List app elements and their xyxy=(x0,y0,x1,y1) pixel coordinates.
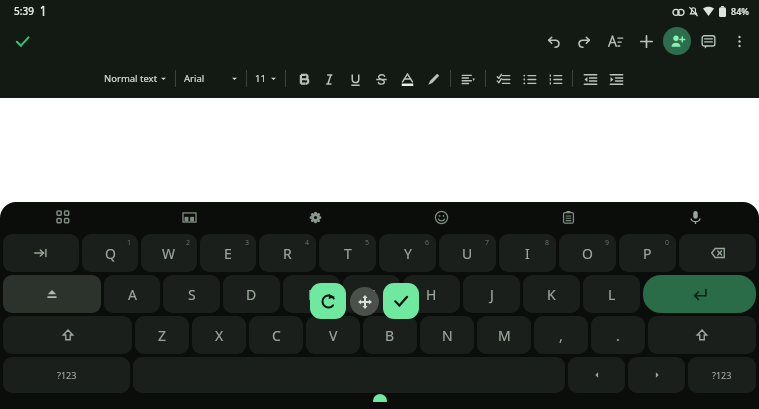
button[interactable]: . xyxy=(591,316,645,354)
button[interactable]: ?123 xyxy=(688,357,756,393)
button[interactable]: L xyxy=(583,275,640,313)
button[interactable]: Rotate xyxy=(310,283,346,319)
button[interactable]: P xyxy=(619,234,676,272)
button[interactable]: Highlight xyxy=(420,66,446,92)
button[interactable]: Clipboard xyxy=(505,202,632,232)
button[interactable]: N xyxy=(420,316,474,354)
button[interactable]: X xyxy=(192,316,246,354)
staticText: Y xyxy=(404,244,412,263)
button[interactable]: Bold xyxy=(290,66,316,92)
button[interactable]: Text formatting xyxy=(601,27,629,55)
button[interactable]: S xyxy=(163,275,220,313)
staticText: . xyxy=(616,326,620,345)
button[interactable]: Increase indent xyxy=(603,66,629,92)
staticText: D xyxy=(246,285,257,304)
button[interactable]: Backspace xyxy=(679,234,756,272)
button[interactable]: D xyxy=(223,275,280,313)
button[interactable]: R xyxy=(259,234,316,272)
button[interactable]: ?123 xyxy=(3,357,130,393)
button[interactable]: Confirm xyxy=(383,283,419,319)
staticText: C xyxy=(272,326,281,345)
button[interactable]: Redo xyxy=(570,27,598,55)
staticText: ?123 xyxy=(712,369,732,381)
button[interactable]: W xyxy=(141,234,197,272)
button[interactable]: More options xyxy=(725,27,753,55)
button[interactable]: Shift xyxy=(648,316,756,354)
button[interactable]: Q xyxy=(82,234,138,272)
staticText: 1 xyxy=(127,238,132,248)
staticText: 0 xyxy=(665,238,670,248)
staticText: 2 xyxy=(186,238,191,248)
button[interactable]: Text color xyxy=(394,66,420,92)
button[interactable]: K xyxy=(523,275,580,313)
button[interactable]: Caps lock xyxy=(3,275,101,313)
button[interactable]: Settings xyxy=(252,202,378,232)
button[interactable]: Share xyxy=(663,27,691,55)
button[interactable]: Strikethrough xyxy=(368,66,394,92)
staticText: U xyxy=(462,244,473,263)
button[interactable]: Undo xyxy=(539,27,567,55)
button[interactable]: H xyxy=(403,275,460,313)
button[interactable]: Move xyxy=(350,287,379,316)
staticText: 5 xyxy=(365,238,370,248)
button[interactable]: Voice input xyxy=(632,202,759,232)
button[interactable]: Shift xyxy=(3,316,132,354)
staticText: M xyxy=(498,326,511,345)
staticText: W xyxy=(162,244,176,263)
button[interactable]: Z xyxy=(135,316,189,354)
button[interactable]: F xyxy=(283,275,340,313)
button[interactable]: Numbered list xyxy=(542,66,568,92)
staticText: 8 xyxy=(545,238,550,248)
button[interactable]: T xyxy=(319,234,376,272)
button[interactable]: Checklist xyxy=(490,66,516,92)
button[interactable]: O xyxy=(559,234,616,272)
button[interactable]: Done xyxy=(8,27,36,55)
button[interactable]: J xyxy=(463,275,520,313)
button[interactable]: Arial xyxy=(180,68,242,89)
button[interactable]: Italic xyxy=(316,66,342,92)
staticText: B xyxy=(385,326,395,345)
staticText: 11 xyxy=(255,72,266,85)
button[interactable] xyxy=(0,98,759,409)
button[interactable]: A xyxy=(104,275,160,313)
button[interactable]: Tab xyxy=(3,234,79,272)
staticText: H xyxy=(426,285,437,304)
button[interactable]: V xyxy=(306,316,360,354)
staticText: T xyxy=(344,244,352,263)
button[interactable]: M xyxy=(477,316,531,354)
button[interactable]: Align xyxy=(455,66,481,92)
button[interactable]: Clipboard grid xyxy=(126,202,252,232)
staticText: 84% xyxy=(731,5,749,17)
button[interactable]: 11 xyxy=(251,68,281,89)
staticText: E xyxy=(224,244,232,263)
button[interactable]: B xyxy=(363,316,417,354)
button[interactable]: Decrease indent xyxy=(577,66,603,92)
staticText: R xyxy=(283,244,292,263)
staticText: 9 xyxy=(605,238,610,248)
button[interactable]: Enter xyxy=(643,275,756,313)
button[interactable]: C xyxy=(249,316,303,354)
staticText: K xyxy=(547,285,556,304)
staticText: A xyxy=(128,285,137,304)
button[interactable]: G xyxy=(343,275,400,313)
button[interactable]: Right xyxy=(628,357,685,393)
button[interactable]: Bulleted list xyxy=(516,66,542,92)
button[interactable]: U xyxy=(439,234,496,272)
staticText: Q xyxy=(105,244,116,263)
button[interactable]: Emoji xyxy=(378,202,505,232)
button[interactable]: Apps xyxy=(0,202,126,232)
button[interactable]: Normal text xyxy=(100,68,171,89)
staticText: F xyxy=(308,285,316,304)
staticText: P xyxy=(643,244,652,263)
button[interactable]: Y xyxy=(379,234,436,272)
button[interactable]: Underline xyxy=(342,66,368,92)
button[interactable]: I xyxy=(499,234,556,272)
button[interactable]: , xyxy=(534,316,588,354)
button[interactable]: Left xyxy=(568,357,625,393)
staticText: , xyxy=(559,326,563,345)
button[interactable]: Insert xyxy=(632,27,660,55)
button[interactable]: E xyxy=(200,234,256,272)
staticText: O xyxy=(582,244,593,263)
button[interactable]: Comments xyxy=(694,27,722,55)
